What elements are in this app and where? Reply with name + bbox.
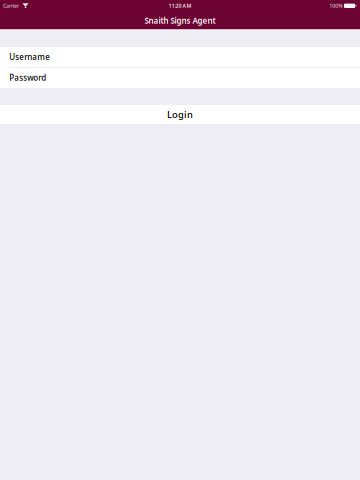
- button[interactable]: Password: [0, 67, 360, 88]
- staticText: Username: [9, 52, 50, 62]
- staticText: 11:20 AM: [168, 2, 191, 9]
- staticText: Login: [167, 108, 193, 121]
- staticText: Snaith Signs Agent: [144, 15, 215, 26]
- staticText: 100%: [329, 2, 342, 9]
- staticText: Carrier: [3, 2, 19, 9]
- button[interactable]: Username: [0, 47, 360, 67]
- staticText: Password: [9, 72, 46, 83]
- button[interactable]: Login: [0, 105, 360, 124]
